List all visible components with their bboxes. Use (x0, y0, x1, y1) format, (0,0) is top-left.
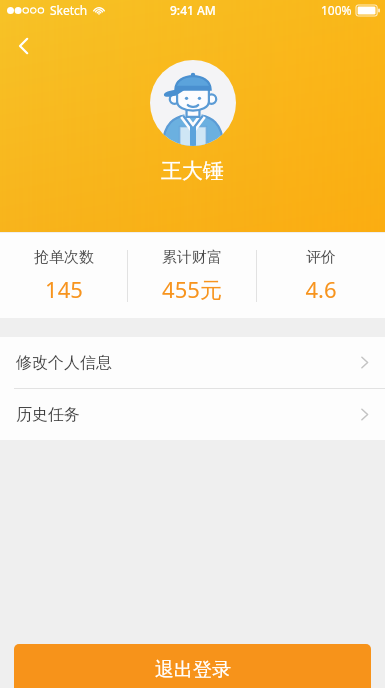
staticText: 4.6 (305, 274, 337, 304)
staticText: 累计财富 (162, 248, 222, 267)
button[interactable]: 历史任务 (0, 389, 385, 440)
staticText: 100% (321, 2, 352, 18)
button[interactable]: 修改个人信息 (0, 337, 385, 388)
button[interactable]: Back (6, 28, 42, 64)
staticText: 修改个人信息 (16, 353, 112, 373)
staticText: 历史任务 (16, 405, 80, 425)
staticText: 评价 (306, 248, 336, 267)
staticText: Sketch (50, 2, 88, 18)
staticText: 抢单次数 (34, 248, 94, 267)
staticText: 退出登录 (155, 658, 231, 682)
button[interactable]: 退出登录 (14, 644, 371, 688)
staticText: 9:41 AM (170, 2, 216, 18)
staticText: 王大锤 (161, 158, 224, 184)
staticText: 455元 (162, 274, 222, 304)
staticText: 145 (45, 274, 83, 304)
